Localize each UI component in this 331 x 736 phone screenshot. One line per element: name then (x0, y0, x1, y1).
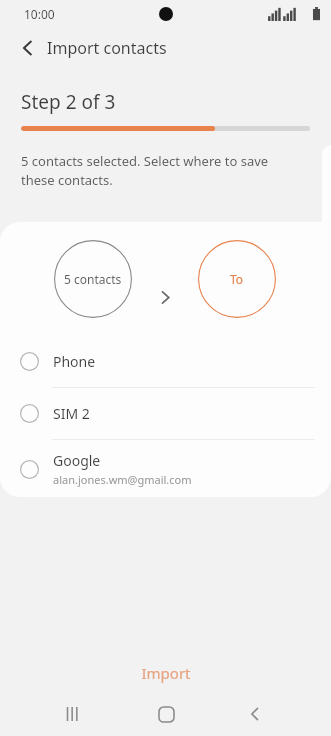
button[interactable]: Back (10, 30, 46, 66)
staticText: Phone (53, 352, 96, 371)
staticText: alan.jones.wm@gmail.com (53, 472, 192, 487)
button[interactable]: Google (0, 440, 331, 497)
button[interactable]: Import (0, 655, 331, 691)
staticText: SIM 2 (53, 404, 90, 423)
button[interactable]: SIM 2 (0, 388, 331, 439)
staticText: 10:00 (24, 6, 55, 22)
staticText: Google (53, 451, 101, 470)
button[interactable]: Phone (0, 336, 331, 387)
staticText: To (230, 271, 244, 287)
button[interactable]: 5 contacts (54, 240, 132, 318)
staticText: Import contacts (47, 37, 167, 59)
button[interactable]: To (198, 240, 276, 318)
button[interactable]: Recent apps (52, 693, 94, 735)
staticText: Step 2 of 3 (21, 89, 116, 115)
button[interactable]: Back (234, 693, 276, 735)
staticText: 5 contacts selected. Select where to sav… (21, 152, 269, 189)
staticText: 5 contacts (64, 271, 122, 287)
button[interactable]: Home (145, 693, 187, 735)
staticText: Import (141, 663, 191, 683)
